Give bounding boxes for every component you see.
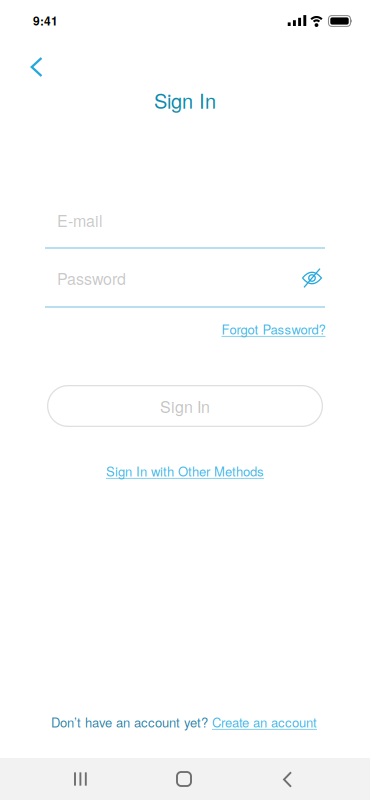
staticText: Forgot Password? xyxy=(221,320,325,338)
staticText: Sign In xyxy=(160,394,210,417)
button[interactable]: Sign In xyxy=(47,385,323,427)
button[interactable]: Back xyxy=(274,762,301,797)
staticText: Sign In xyxy=(154,86,216,114)
button[interactable]: Create an account xyxy=(210,707,319,737)
staticText: 9:41 xyxy=(33,12,58,29)
button[interactable]: Password xyxy=(0,256,300,300)
button[interactable]: Forgot Password? xyxy=(217,316,329,342)
staticText: Don’t have an account yet? xyxy=(51,713,208,731)
staticText: Password xyxy=(57,266,126,289)
button[interactable]: Back xyxy=(24,50,49,84)
button[interactable]: E-mail xyxy=(0,198,370,242)
staticText: E-mail xyxy=(57,208,103,231)
button[interactable]: Home xyxy=(167,762,201,796)
button[interactable]: Recent apps xyxy=(64,762,97,796)
staticText: Create an account xyxy=(212,713,317,731)
staticText: Sign In with Other Methods xyxy=(106,462,264,480)
button[interactable]: Sign In with Other Methods xyxy=(102,458,268,484)
button[interactable]: Show password xyxy=(294,264,329,292)
